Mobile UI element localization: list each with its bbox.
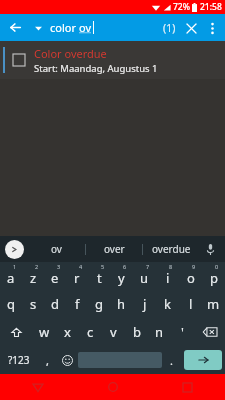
staticText: y	[118, 269, 125, 287]
button[interactable]: w	[32, 318, 56, 346]
button[interactable]: ?123	[0, 346, 38, 374]
staticText: 4	[79, 263, 83, 270]
button[interactable]: ov	[28, 236, 85, 262]
button[interactable]: ,	[38, 346, 57, 374]
staticText: o	[187, 269, 195, 287]
button[interactable]: 4	[66, 262, 88, 290]
staticText: ov	[51, 242, 62, 256]
staticText: b	[133, 323, 141, 341]
button[interactable]: v	[102, 318, 125, 346]
staticText: 21:58	[200, 1, 222, 13]
button[interactable]: 8	[156, 262, 179, 290]
staticText: r	[74, 269, 80, 287]
staticText: 8	[169, 263, 173, 270]
staticText: .	[170, 353, 173, 368]
button[interactable]: Complete task	[0, 41, 225, 79]
staticText: '	[181, 323, 184, 341]
staticText: a	[7, 269, 15, 287]
staticText: Color overdue	[34, 46, 107, 61]
button[interactable]: q	[0, 290, 22, 318]
button[interactable]: b	[125, 318, 148, 346]
button[interactable]: j	[133, 290, 156, 318]
staticText: 6	[123, 263, 127, 270]
staticText: Start: Maandag, Augustus 1	[34, 62, 158, 75]
button[interactable]: k	[156, 290, 179, 318]
button[interactable]: s	[22, 290, 44, 318]
button[interactable]: Back	[0, 374, 75, 400]
button[interactable]: f	[66, 290, 88, 318]
button[interactable]: 5	[88, 262, 110, 290]
staticText: u	[140, 269, 149, 287]
button[interactable]: Back	[0, 14, 30, 41]
button[interactable]: d	[44, 290, 66, 318]
button[interactable]: Voice input	[200, 239, 220, 259]
button[interactable]: Backspace	[194, 318, 225, 346]
button[interactable]: 3	[44, 262, 66, 290]
staticText: f	[75, 295, 80, 313]
staticText: ?123	[8, 353, 30, 367]
staticText: 2	[35, 263, 39, 270]
button[interactable]: More options	[201, 17, 223, 39]
staticText: s	[30, 295, 37, 313]
button[interactable]: 6	[110, 262, 133, 290]
staticText: ,	[46, 353, 49, 368]
staticText: p	[210, 269, 218, 287]
staticText: 7	[146, 263, 150, 270]
button[interactable]: Enter	[184, 350, 222, 370]
staticText: h	[117, 295, 126, 313]
button[interactable]: l	[179, 290, 202, 318]
button[interactable]: 9	[179, 262, 202, 290]
button[interactable]: c	[79, 318, 102, 346]
staticText: 0	[215, 263, 219, 270]
staticText: 5	[101, 263, 105, 270]
staticText: over	[104, 242, 125, 256]
staticText: ov	[79, 20, 92, 35]
button[interactable]: 0	[202, 262, 225, 290]
button[interactable]: over	[86, 236, 142, 262]
staticText: d	[51, 295, 59, 313]
button[interactable]: g	[88, 290, 110, 318]
button[interactable]: n	[148, 318, 171, 346]
staticText: x	[64, 323, 71, 341]
staticText: i	[166, 269, 170, 287]
button[interactable]: Search options	[30, 20, 46, 36]
staticText: e	[51, 269, 59, 287]
button[interactable]: 1	[0, 262, 22, 290]
staticText: z	[30, 269, 37, 287]
staticText: t	[97, 269, 102, 287]
staticText: (1)	[163, 21, 176, 35]
staticText: j	[143, 295, 147, 313]
staticText: color	[50, 20, 79, 35]
button[interactable]: overdue	[143, 236, 199, 262]
button[interactable]: Expand suggestions	[5, 240, 24, 259]
staticText: 72%	[173, 1, 190, 13]
button[interactable]: h	[110, 290, 133, 318]
button[interactable]: m	[202, 290, 225, 318]
staticText: c	[87, 323, 94, 341]
staticText: 3	[57, 263, 61, 270]
staticText: n	[155, 323, 164, 341]
button[interactable]: '	[171, 318, 194, 346]
button[interactable]: 7	[133, 262, 156, 290]
staticText: k	[164, 295, 171, 313]
staticText: overdue	[152, 242, 191, 256]
button[interactable]: Home	[75, 374, 150, 400]
button[interactable]: Clear	[181, 18, 201, 38]
button[interactable]: Recents	[150, 374, 225, 400]
button[interactable]: Shift	[0, 318, 32, 346]
staticText: 9	[192, 263, 196, 270]
staticText: m	[207, 295, 220, 313]
button[interactable]: 2	[22, 262, 44, 290]
button[interactable]: Emoji	[57, 346, 78, 374]
button[interactable]: x	[56, 318, 79, 346]
staticText: 1	[13, 263, 17, 270]
staticText: l	[189, 295, 193, 313]
staticText: q	[7, 295, 15, 313]
staticText: w	[39, 323, 50, 341]
button[interactable]: .	[162, 346, 181, 374]
staticText: v	[110, 323, 117, 341]
button[interactable]: Complete task	[12, 53, 26, 67]
staticText: g	[95, 295, 103, 313]
